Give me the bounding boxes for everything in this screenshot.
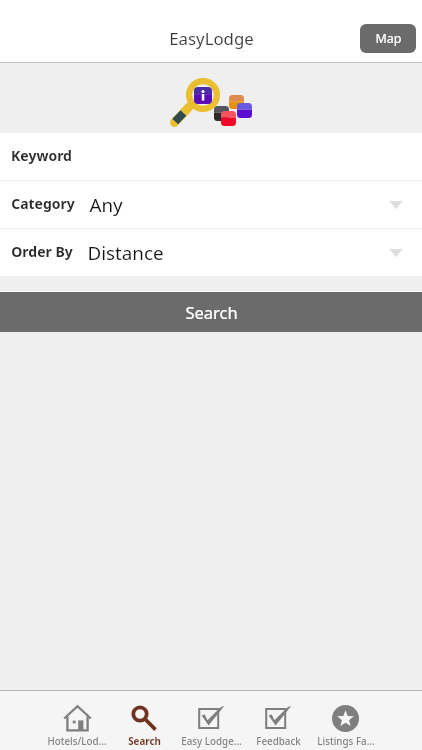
button[interactable]: Category (0, 181, 422, 228)
button[interactable]: Keyword (0, 133, 422, 180)
button[interactable]: Map (360, 24, 416, 53)
staticText: EasyLodge (169, 27, 254, 50)
staticText: Map (375, 30, 402, 47)
button[interactable]: Hotels and Lodging (43, 690, 111, 750)
button[interactable]: Order By (0, 229, 422, 276)
staticText: Category (11, 194, 75, 213)
staticText: Easy Lodge... (181, 735, 242, 748)
staticText: Search (128, 735, 161, 748)
staticText: Order By (11, 242, 73, 261)
staticText: Search (185, 301, 238, 323)
button[interactable]: Easy Lodge List (178, 690, 245, 750)
staticText: Listings Fa... (317, 735, 375, 748)
staticText: Any (89, 192, 123, 218)
staticText: Feedback (256, 735, 301, 748)
button[interactable]: Search (111, 690, 178, 750)
staticText: Keyword (11, 146, 72, 165)
staticText: Distance (87, 240, 164, 266)
button[interactable]: Feedback (245, 690, 312, 750)
staticText: Hotels/Lod... (47, 735, 107, 748)
button[interactable]: Listings Favorites (312, 690, 379, 750)
button[interactable]: Search (0, 292, 422, 332)
